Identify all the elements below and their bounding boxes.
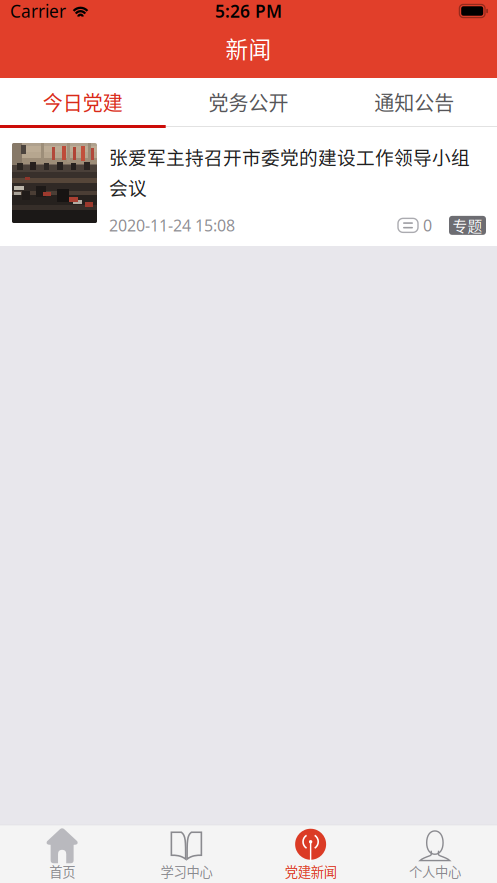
button[interactable]: 张爱军主持召开市委党的建设工作领导小组会议 xyxy=(0,128,497,246)
button[interactable]: 党务公开 xyxy=(166,78,331,125)
button[interactable]: 个人中心 xyxy=(373,825,497,883)
staticText: 个人中心 xyxy=(409,862,461,881)
staticText: 张爱军主持召开市委党的建设工作领导小组会议 xyxy=(109,143,470,201)
button[interactable]: 学习中心 xyxy=(124,825,248,883)
staticText: 党建新闻 xyxy=(285,862,337,881)
staticText: 通知公告 xyxy=(374,87,454,116)
staticText: 学习中心 xyxy=(160,862,212,881)
staticText: 0 xyxy=(423,215,432,236)
button[interactable]: 党建新闻 xyxy=(248,825,373,883)
staticText: 2020-11-24 15:08 xyxy=(109,215,235,236)
staticText: 今日党建 xyxy=(43,87,123,116)
button[interactable]: 今日党建 xyxy=(0,78,166,125)
button[interactable]: 首页 xyxy=(0,825,124,883)
staticText: 新闻 xyxy=(225,32,271,64)
button[interactable]: 通知公告 xyxy=(331,78,497,125)
staticText: Carrier xyxy=(10,0,66,22)
staticText: 党务公开 xyxy=(208,87,288,116)
staticText: 专题 xyxy=(452,215,482,236)
staticText: 5:26 PM xyxy=(215,0,282,22)
staticText: 首页 xyxy=(49,862,75,881)
